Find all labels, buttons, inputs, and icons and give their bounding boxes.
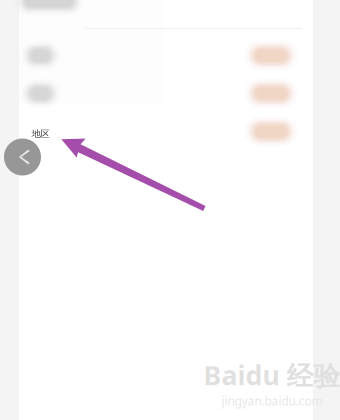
staticText: Baidu 经验	[203, 357, 340, 393]
button[interactable]: Back	[4, 138, 41, 175]
staticText: 地区	[31, 128, 49, 140]
staticText: jingyan.baidu.com	[221, 393, 322, 409]
